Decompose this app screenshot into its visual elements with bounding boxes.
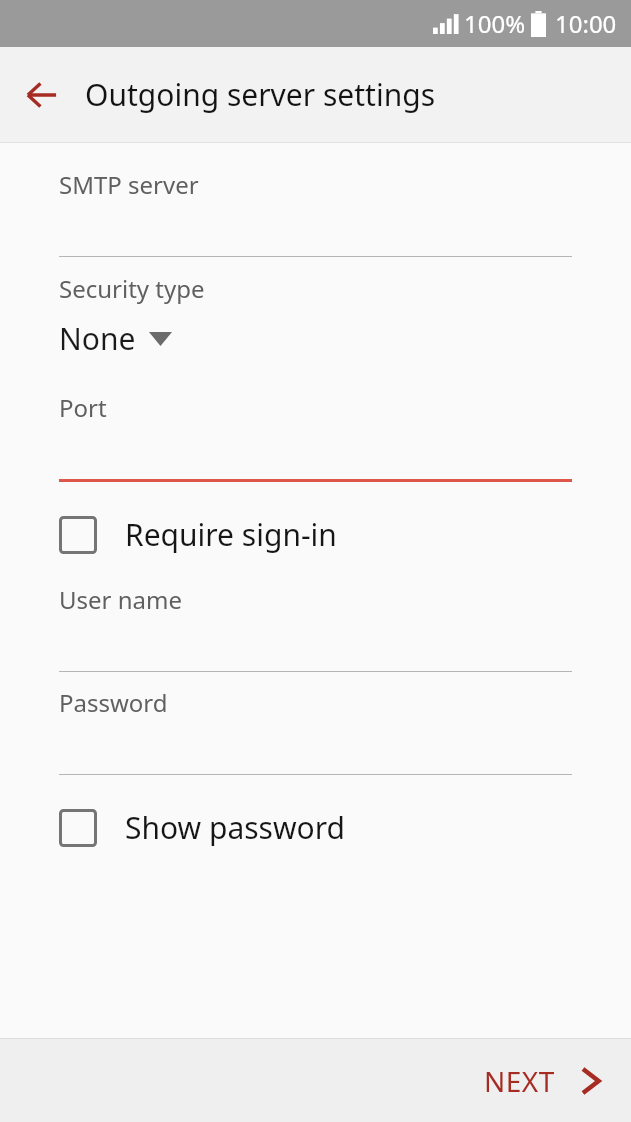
- staticText: SMTP server: [59, 168, 199, 201]
- button[interactable]: Show password: [0, 797, 631, 858]
- staticText: NEXT: [484, 1062, 555, 1100]
- staticText: Password: [59, 686, 168, 719]
- button[interactable]: Back: [14, 67, 70, 123]
- staticText: Security type: [59, 272, 205, 305]
- button[interactable]: NEXT: [347, 1039, 631, 1122]
- staticText: Show password: [125, 807, 345, 848]
- staticText: None: [59, 318, 136, 359]
- button[interactable]: Password: [0, 686, 631, 775]
- button[interactable]: Require sign-in: [0, 504, 631, 565]
- button[interactable]: User name: [0, 583, 631, 672]
- button[interactable]: Port: [0, 391, 631, 482]
- staticText: Outgoing server settings: [85, 74, 436, 115]
- staticText: Port: [59, 391, 107, 424]
- button[interactable]: SMTP server: [0, 156, 631, 257]
- staticText: 10:00: [555, 7, 617, 40]
- staticText: Require sign-in: [125, 514, 337, 555]
- staticText: 100%: [464, 7, 526, 40]
- button[interactable]: Security type: [0, 272, 631, 359]
- staticText: User name: [59, 583, 182, 616]
